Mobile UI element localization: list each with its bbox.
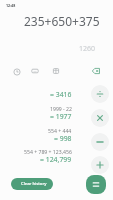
button[interactable]: Equals: [86, 175, 106, 194]
button[interactable]: mul: [91, 109, 109, 127]
staticText: 1260: [79, 44, 96, 54]
staticText: 554 + 789 + 123,456: [24, 148, 72, 155]
staticText: Clear history: [21, 181, 47, 187]
staticText: = 998: [54, 134, 72, 143]
staticText: 235+650+375: [24, 13, 100, 29]
button[interactable]: Backspace: [89, 64, 103, 78]
button[interactable]: sub: [91, 133, 109, 151]
staticText: = 3416: [50, 90, 72, 99]
button[interactable]: History: [10, 65, 24, 79]
button[interactable]: add: [91, 156, 109, 174]
staticText: 1999 - 22: [50, 105, 72, 112]
button[interactable]: Clear history: [11, 178, 53, 190]
button[interactable]: div: [91, 85, 109, 103]
staticText: = 1977: [50, 112, 72, 121]
staticText: 12:48: [6, 3, 16, 8]
staticText: = 124,799: [40, 155, 72, 164]
button[interactable]: Unit converter: [49, 64, 63, 78]
button[interactable]: Keyboard: [28, 64, 42, 78]
staticText: 554 + 444: [48, 127, 72, 134]
